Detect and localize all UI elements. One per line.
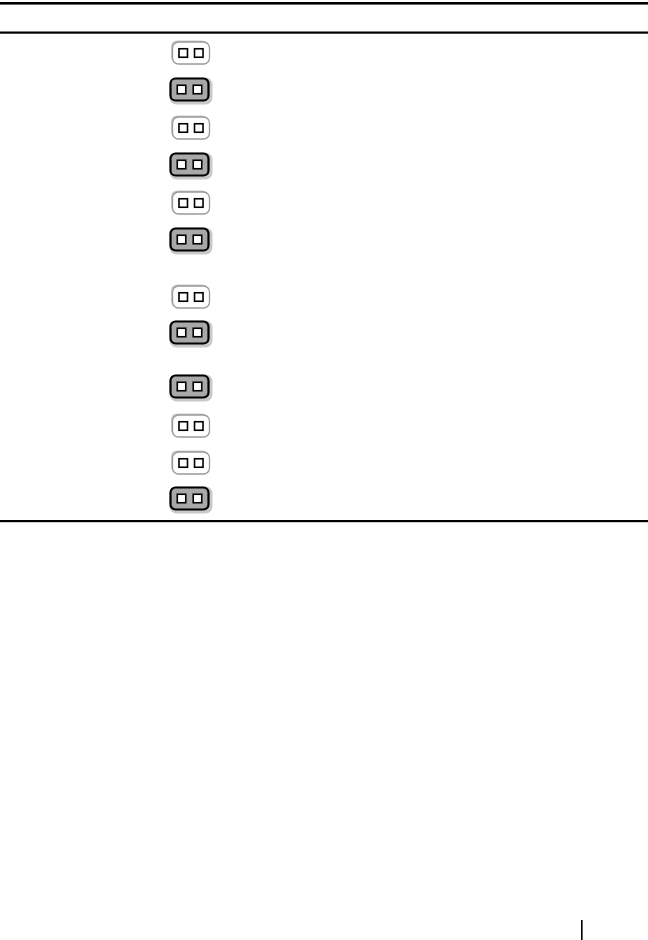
button[interactable]: Switch 5, off [165,188,217,218]
button[interactable]: Switch 12, on [165,485,217,515]
button[interactable]: Switch 4, on [165,151,217,181]
button[interactable]: Switch 6, on [165,226,217,256]
button[interactable]: Switch 8, on [165,319,217,349]
button[interactable]: Switch 2, on [165,76,217,106]
button[interactable]: Switch 9, on [165,373,217,403]
button[interactable]: Switch 1, off [165,38,217,68]
button[interactable]: Switch 3, off [165,113,217,143]
button[interactable]: Switch 10, off [165,411,217,441]
button[interactable]: Switch 11, off [165,448,217,478]
button[interactable]: Switch 7, off [165,282,217,312]
